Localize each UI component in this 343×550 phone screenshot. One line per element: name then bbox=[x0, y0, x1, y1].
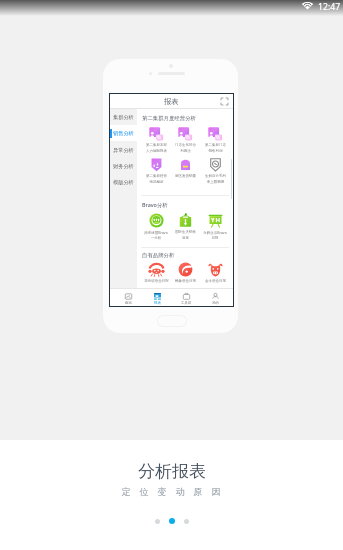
button[interactable]: 第二集群门店 销售利润 bbox=[201, 126, 229, 153]
staticText: 定位变动原因 bbox=[117, 486, 225, 497]
staticText: 第二集群经营 情况概览 bbox=[146, 174, 167, 184]
button[interactable]: 工具箱 bbox=[172, 289, 201, 306]
button[interactable]: 异常分析 bbox=[110, 142, 137, 158]
staticText: 国际生天销售 进度 bbox=[175, 230, 196, 240]
button[interactable]: 概览 bbox=[113, 289, 143, 306]
staticText: 生鲜百分毛利 率上限预测 bbox=[205, 174, 226, 184]
button[interactable]: 门店生化符合 利用法 bbox=[171, 126, 199, 153]
staticText: 财务分析 bbox=[113, 163, 134, 170]
staticText: 永辉生活Bravo 月报 bbox=[203, 230, 227, 240]
button[interactable]: 我的 bbox=[201, 289, 230, 306]
button[interactable]: 第二集群经营 情况概览 bbox=[142, 157, 170, 184]
button[interactable]: 蜂象营业日报 bbox=[171, 262, 199, 283]
staticText: 金牛营业日报 bbox=[205, 279, 226, 283]
staticText: 第二集群本部 人力编制报表 bbox=[146, 143, 167, 153]
button[interactable]: Fullscreen bbox=[220, 97, 229, 106]
button[interactable]: 销售分析 bbox=[110, 125, 137, 141]
staticText: 我的 bbox=[212, 301, 219, 305]
staticText: 报表 bbox=[164, 97, 179, 106]
button[interactable]: 新区发货销量 bbox=[171, 157, 199, 178]
button[interactable]: 模版分析 bbox=[110, 174, 137, 190]
staticText: 异常分析 bbox=[113, 147, 134, 154]
button[interactable]: 财务分析 bbox=[110, 158, 137, 174]
button[interactable]: 报表 bbox=[143, 289, 172, 306]
staticText: 集群分析 bbox=[113, 114, 134, 121]
button[interactable]: 国际生天销售 进度 bbox=[171, 213, 199, 240]
staticText: 跨系统国Bravo 一分析 bbox=[144, 230, 168, 240]
staticText: 分析报表 bbox=[138, 461, 206, 482]
button[interactable]: 茶先饮营业日报 bbox=[142, 262, 170, 283]
button[interactable]: 永辉生活Bravo 月报 bbox=[201, 213, 229, 240]
staticText: 模版分析 bbox=[113, 179, 134, 186]
staticText: Bravo分析 bbox=[142, 201, 168, 208]
staticText: 蜂象营业日报 bbox=[175, 279, 196, 283]
staticText: 概览 bbox=[125, 301, 132, 305]
staticText: 报表 bbox=[154, 301, 161, 305]
staticText: 第二集群门店 销售利润 bbox=[205, 143, 226, 153]
staticText: 销售分析 bbox=[113, 130, 134, 137]
button[interactable]: 生鲜百分毛利 率上限预测 bbox=[201, 157, 229, 184]
staticText: 自有品牌分析 bbox=[142, 252, 175, 259]
button[interactable]: 第二集群本部 人力编制报表 bbox=[142, 126, 170, 153]
staticText: 门店生化符合 利用法 bbox=[175, 143, 196, 153]
staticText: 工具箱 bbox=[181, 301, 192, 305]
staticText: 茶先饮营业日报 bbox=[144, 279, 169, 283]
button[interactable]: 金牛营业日报 bbox=[201, 262, 229, 283]
staticText: 新区发货销量 bbox=[175, 174, 196, 178]
staticText: 12:47 bbox=[318, 1, 341, 13]
staticText: 第二集群月度经营分析 bbox=[142, 115, 196, 122]
button[interactable]: 跨系统国Bravo 一分析 bbox=[142, 213, 170, 240]
button[interactable]: 集群分析 bbox=[110, 109, 137, 125]
